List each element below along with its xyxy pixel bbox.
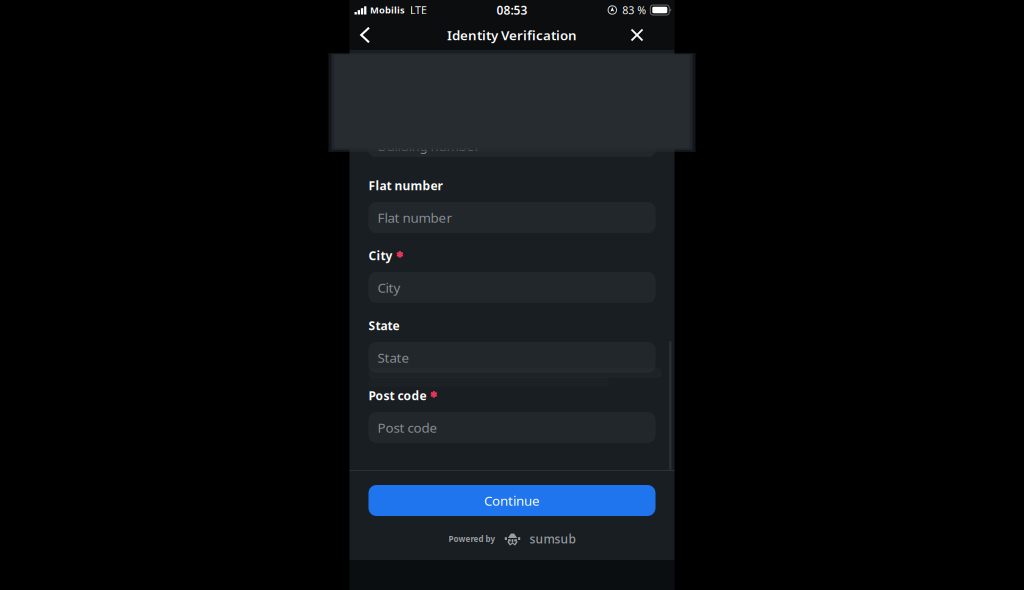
button[interactable]: Continue [368,485,655,516]
staticText: LTE [410,3,427,17]
button[interactable]: Flat number [368,202,655,233]
staticText: Mobilis [370,4,405,16]
staticText: City [368,247,392,263]
staticText: sumsub [529,531,575,547]
staticText: Post code [377,419,437,436]
button[interactable]: Post code [368,412,655,443]
staticText: Flat number [377,209,452,226]
staticText: State [377,349,409,366]
staticText: Flat number [368,177,442,193]
staticText: Post code [368,387,426,403]
button[interactable]: State [368,342,655,373]
button[interactable]: City [368,272,655,303]
staticText: Building number [377,137,480,155]
staticText: Identity Verification [447,26,577,44]
staticText: 08:53 [496,2,527,18]
staticText: Powered by [448,534,495,544]
staticText: City [377,279,400,296]
staticText: 83 % [622,3,646,17]
staticText: Continue [484,492,540,509]
button[interactable]: Back [349,20,378,50]
staticText: State [368,317,399,333]
button[interactable]: Close [622,20,674,50]
